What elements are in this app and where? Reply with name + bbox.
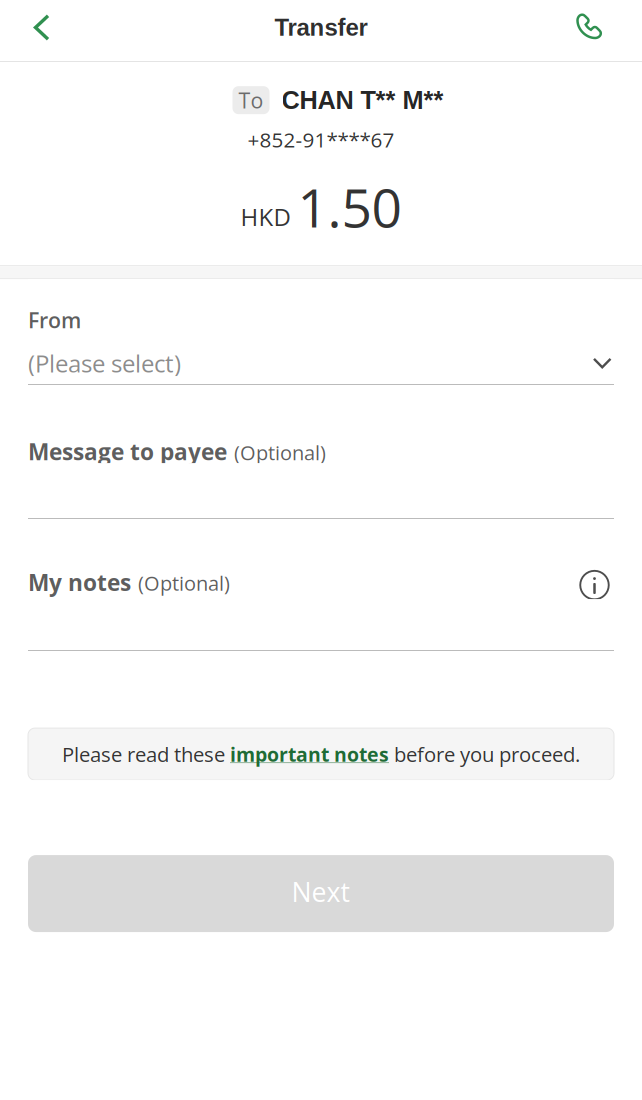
staticText: important notes [230,741,389,767]
staticText: From [28,306,81,335]
staticText: Transfer [274,14,367,41]
staticText: before you proceed. [389,740,580,768]
staticText: Message to payee [28,436,227,467]
staticText: My notes [28,567,131,598]
staticText: (Optional) [234,439,326,466]
staticText: Please read these [62,740,230,768]
staticText: (Please select) [28,347,181,379]
staticText: (Optional) [138,569,230,596]
staticText: Next [291,873,350,910]
button[interactable]: Information about notes [583,567,614,598]
staticText: 1.50 [297,170,401,243]
button[interactable]: Back [10,0,66,61]
staticText: CHAN T** M** [281,86,443,114]
button[interactable]: Call [562,0,616,61]
staticText: +852-91****67 [247,125,394,153]
button[interactable]: (Please select) [28,350,614,376]
staticText: HKD [240,200,290,233]
button[interactable]: Please read these [28,728,614,780]
button[interactable]: Next [28,855,614,932]
staticText: To [238,86,263,115]
